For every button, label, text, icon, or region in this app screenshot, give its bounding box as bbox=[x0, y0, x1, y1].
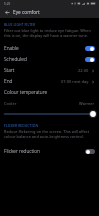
button[interactable]: Flicker reduction bbox=[0, 146, 99, 157]
staticText: Start bbox=[4, 67, 15, 74]
staticText: FLICKER REDUCTION bbox=[4, 123, 39, 128]
staticText: Scheduled bbox=[4, 56, 27, 63]
staticText: End bbox=[4, 78, 13, 85]
staticText: 5:25 bbox=[4, 2, 11, 6]
button[interactable]: Colour temperature bbox=[0, 87, 99, 98]
staticText: Warmer bbox=[79, 101, 95, 106]
staticText: BLUE LIGHT FILTER bbox=[4, 22, 36, 27]
staticText: Enable bbox=[4, 45, 19, 52]
staticText: Reduce flickering on the screen. This wi… bbox=[4, 129, 95, 140]
staticText: 07:00 next day bbox=[61, 79, 89, 84]
button[interactable]: Back bbox=[2, 7, 13, 16]
staticText: Eye comfort bbox=[13, 9, 40, 15]
staticText: Colour temperature bbox=[4, 89, 48, 96]
staticText: Flicker reduction bbox=[4, 148, 40, 155]
button[interactable]: Start bbox=[0, 65, 99, 76]
button[interactable]: Enable bbox=[0, 43, 99, 54]
button[interactable]: End bbox=[0, 76, 99, 87]
button[interactable]: Colour temperature bbox=[0, 106, 99, 122]
staticText: Cooler bbox=[4, 101, 17, 106]
staticText: 22:00 bbox=[78, 68, 89, 73]
staticText: Filter out blue light to reduce eye fati… bbox=[4, 28, 95, 39]
button[interactable]: Scheduled bbox=[0, 54, 99, 65]
